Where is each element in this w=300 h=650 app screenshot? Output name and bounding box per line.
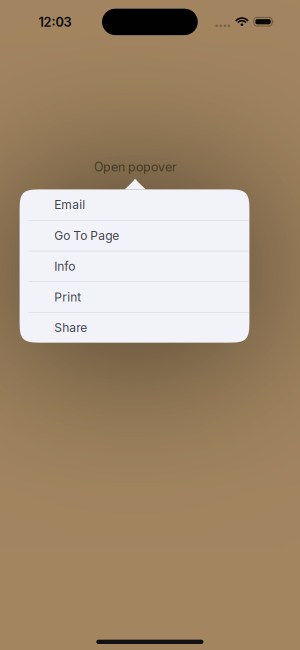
staticText: Print: [54, 290, 81, 304]
button[interactable]: Go To Page: [20, 220, 249, 251]
staticText: Open popover: [94, 159, 177, 174]
staticText: Info: [54, 259, 75, 274]
button[interactable]: Open popover: [0, 160, 300, 174]
button[interactable]: Email: [20, 189, 249, 220]
staticText: 12:03: [38, 14, 71, 30]
staticText: Email: [54, 197, 85, 212]
staticText: Go To Page: [54, 228, 119, 243]
button[interactable]: Print: [20, 281, 249, 312]
staticText: Share: [54, 320, 87, 335]
button[interactable]: Info: [20, 251, 249, 281]
button[interactable]: Share: [20, 312, 249, 343]
